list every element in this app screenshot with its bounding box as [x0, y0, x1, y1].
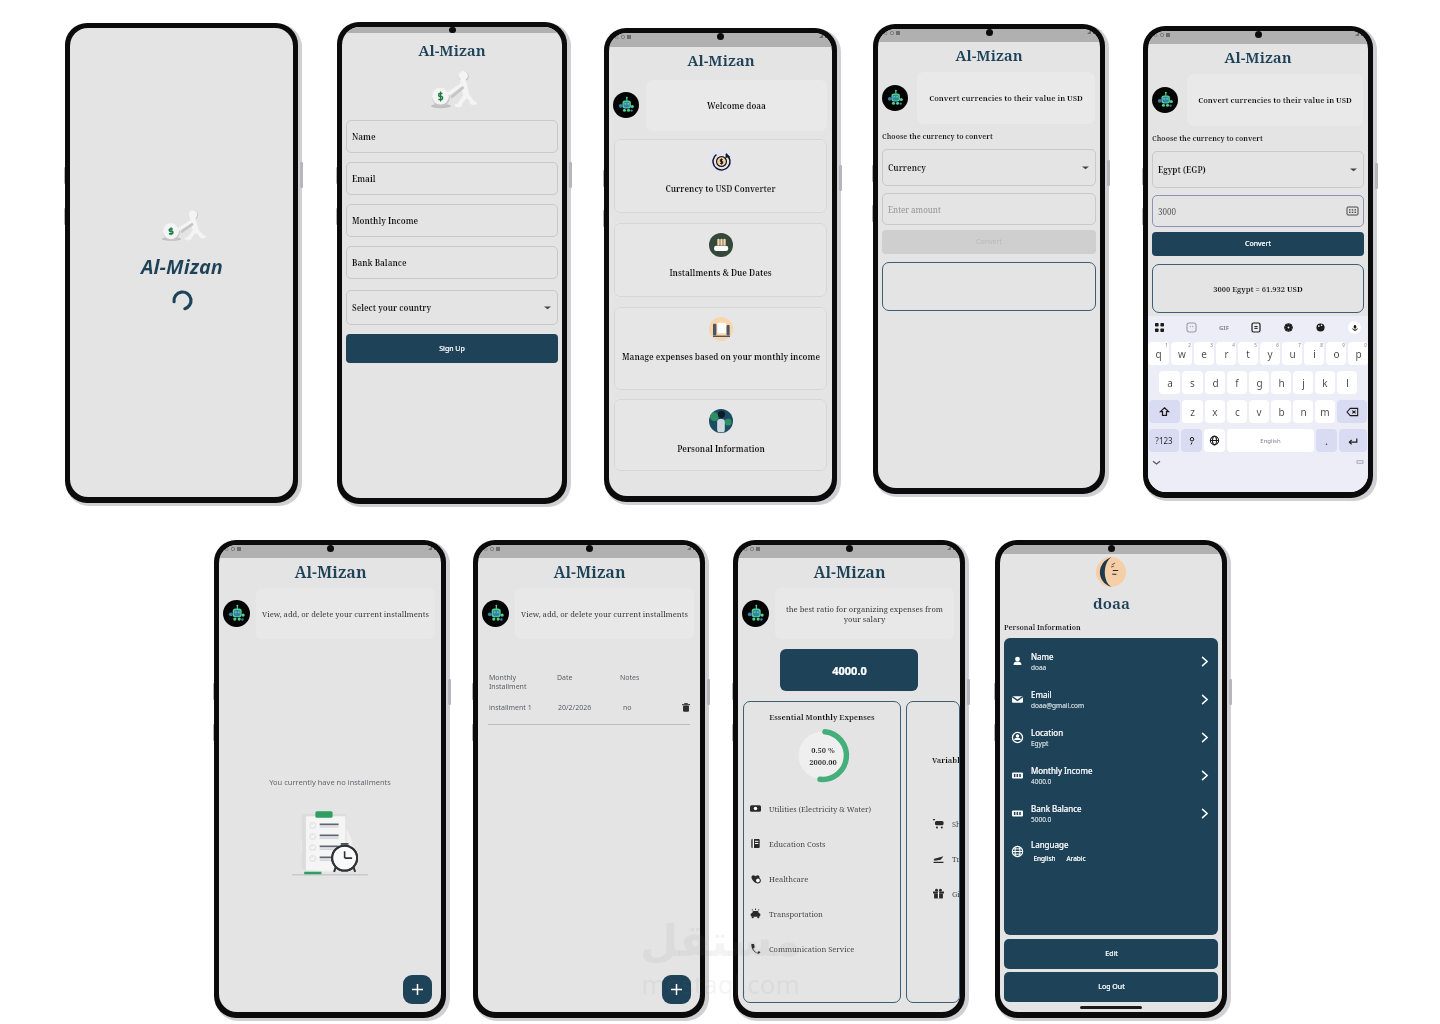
button[interactable]: Currency — [882, 149, 1096, 186]
button[interactable]: Egypt (EGP) — [1152, 151, 1364, 188]
button[interactable]: Convert currencies to their value in USD — [917, 72, 1095, 124]
button[interactable]: Installments & Due Dates — [614, 223, 827, 297]
button[interactable]: Monthly Income — [1011, 756, 1210, 794]
button[interactable]: r — [1216, 342, 1236, 365]
button[interactable]: d — [1205, 371, 1225, 394]
button[interactable]: t — [1238, 342, 1258, 365]
button[interactable]: emoji — [1181, 429, 1202, 452]
button[interactable]: Travel — [932, 841, 960, 876]
button[interactable]: 4000.0 — [780, 649, 918, 691]
button[interactable]: Transportation — [749, 896, 895, 931]
button[interactable]: Bank Balance — [1011, 794, 1210, 832]
button[interactable]: j — [1293, 371, 1313, 394]
button[interactable]: Gifts — [932, 876, 960, 911]
button[interactable]: g — [1249, 371, 1269, 394]
button[interactable]: l — [1337, 371, 1357, 394]
button[interactable]: Monthly Income — [346, 204, 558, 237]
button[interactable]: z — [1182, 400, 1203, 423]
staticText: installment 1 — [489, 703, 558, 713]
button[interactable]: i — [1304, 342, 1324, 365]
button[interactable]: Location — [1011, 718, 1210, 756]
button[interactable]: . — [1316, 429, 1337, 452]
button[interactable]: Name — [346, 120, 558, 153]
button[interactable]: 3000 — [1152, 195, 1364, 227]
button[interactable]: Shopping — [932, 806, 960, 841]
button[interactable]: Communication Service — [749, 931, 895, 966]
button[interactable]: Personal Information — [614, 399, 827, 471]
button[interactable]: View, add, or delete your current instal… — [256, 588, 435, 639]
button[interactable]: Name — [1011, 642, 1210, 680]
button[interactable]: ?123 — [1149, 429, 1179, 452]
button[interactable]: b — [1271, 400, 1291, 423]
button[interactable]: u — [1282, 342, 1302, 365]
button[interactable]: n — [1293, 400, 1313, 423]
button[interactable]: h — [1271, 371, 1291, 394]
button[interactable]: enter — [1339, 429, 1367, 452]
button[interactable]: Log Out — [1004, 972, 1218, 1002]
other: Settings — [1284, 323, 1293, 332]
button[interactable]: View, add, or delete your current instal… — [515, 588, 694, 639]
staticText: 45 — [1152, 32, 1158, 38]
button[interactable]: Education Costs — [749, 826, 895, 861]
button[interactable]: Welcome doaa — [646, 80, 827, 131]
staticText: v — [1256, 405, 1262, 419]
button[interactable]: Convert — [1152, 232, 1364, 256]
button[interactable]: Convert currencies to their value in USD — [1187, 74, 1363, 126]
button[interactable]: the best ratio for organizing expenses f… — [775, 588, 954, 639]
button[interactable]: v — [1249, 400, 1269, 423]
staticText: Communication Service — [769, 944, 855, 954]
staticText: 45 — [742, 546, 748, 552]
staticText: Date — [557, 673, 620, 683]
button[interactable]: Add installment — [662, 975, 691, 1004]
button[interactable]: a — [1159, 371, 1180, 394]
button[interactable]: Edit — [1004, 939, 1218, 969]
button[interactable]: k — [1315, 371, 1335, 394]
button[interactable]: y — [1260, 342, 1280, 365]
button[interactable]: p — [1348, 342, 1368, 365]
button[interactable]: Sign Up — [346, 334, 558, 363]
button[interactable]: Manage expenses based on your monthly in… — [614, 307, 827, 390]
staticText: Al-Mizan — [813, 561, 886, 583]
staticText: q — [1155, 347, 1162, 361]
button[interactable]: Healthcare — [749, 861, 895, 896]
button[interactable]: globe — [1204, 429, 1225, 452]
staticText: mostaql.com — [641, 966, 800, 1001]
button[interactable]: m — [1315, 400, 1335, 423]
button[interactable]: Add installment — [403, 975, 432, 1004]
button[interactable]: Enter amount — [882, 193, 1096, 225]
button[interactable]: Email — [1011, 680, 1210, 718]
staticText: Education Costs — [769, 839, 826, 849]
button[interactable]: f — [1227, 371, 1247, 394]
button[interactable]: Email — [346, 162, 558, 195]
staticText: Monthly Installment — [489, 673, 557, 691]
button[interactable]: Utilities (Electricity & Water) — [749, 791, 895, 826]
button[interactable]: o — [1326, 342, 1346, 365]
staticText: w — [1178, 347, 1186, 361]
staticText: Language — [1031, 839, 1069, 850]
staticText: d — [1212, 376, 1219, 390]
button[interactable]: del — [1337, 400, 1367, 423]
button[interactable]: s — [1182, 371, 1203, 394]
staticText: Convert — [1245, 239, 1271, 249]
staticText: 7 — [1298, 342, 1301, 348]
button[interactable]: Select your country — [346, 290, 558, 325]
button[interactable]: q — [1148, 342, 1169, 365]
button[interactable]: Currency to USD Converter — [614, 139, 827, 213]
staticText: Shopping — [952, 819, 960, 829]
button[interactable]: Arabic — [1064, 854, 1088, 863]
button[interactable]: Bank Balance — [346, 246, 558, 279]
staticText: n — [1300, 405, 1307, 419]
button[interactable]: c — [1227, 400, 1247, 423]
staticText: English — [1260, 437, 1281, 445]
button[interactable]: x — [1205, 400, 1225, 423]
button[interactable]: w — [1171, 342, 1192, 365]
button[interactable]: English — [1227, 429, 1314, 452]
button[interactable]: e — [1194, 342, 1214, 365]
button[interactable]: Delete — [680, 702, 691, 713]
button[interactable]: shift — [1149, 400, 1180, 423]
button[interactable]: English — [1031, 854, 1058, 863]
staticText: doaa — [1031, 663, 1047, 672]
staticText: 1 — [1165, 342, 1168, 348]
button[interactable]: Language — [1011, 832, 1210, 870]
